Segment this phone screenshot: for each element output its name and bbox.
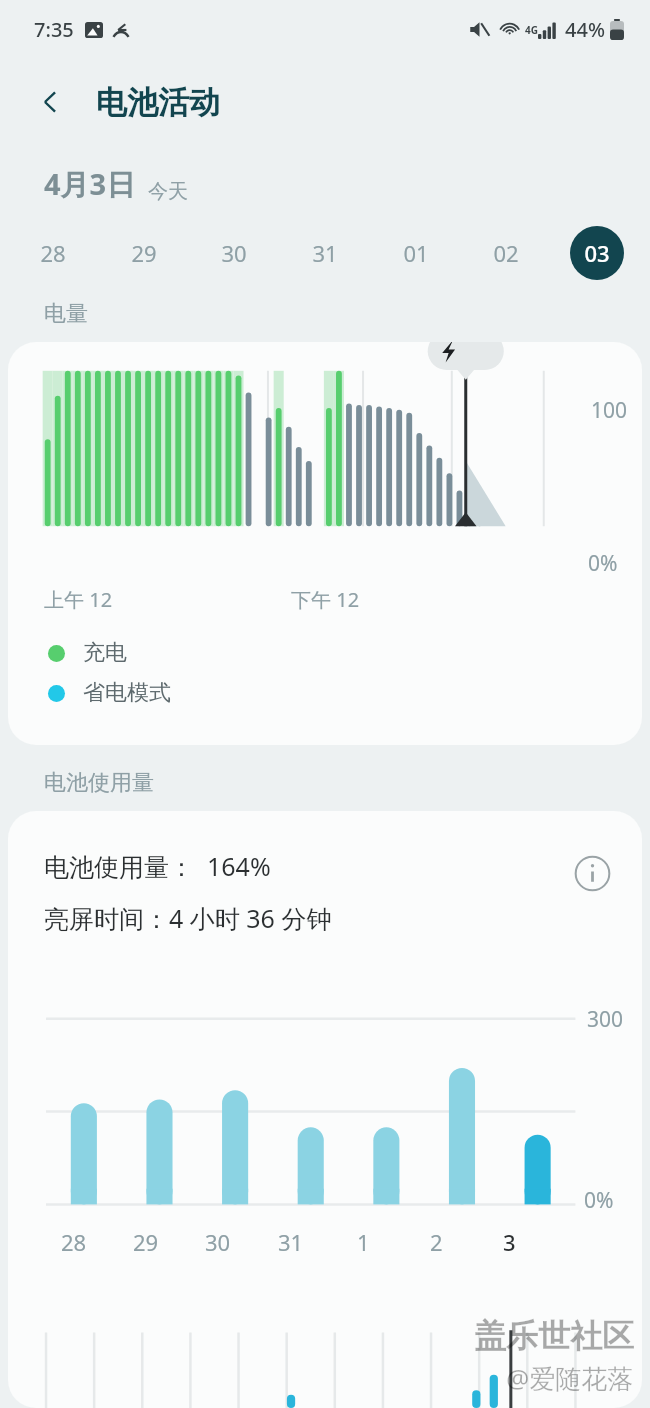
staticText: 300	[587, 1005, 624, 1034]
staticText: 02	[493, 238, 519, 268]
staticText: 2	[430, 1227, 443, 1257]
staticText: 充电	[83, 639, 127, 667]
button[interactable]: Information	[568, 849, 616, 897]
staticText: 30	[221, 238, 247, 268]
staticText: 31	[312, 238, 338, 268]
button[interactable]: 31	[298, 226, 352, 280]
staticText: 28	[61, 1227, 87, 1257]
staticText: 3	[503, 1227, 516, 1257]
staticText: 今天	[148, 179, 188, 204]
staticText: 44%	[565, 16, 605, 43]
button[interactable]: 28	[26, 226, 80, 280]
button[interactable]: 03	[570, 226, 624, 280]
staticText: 31	[278, 1227, 304, 1257]
button[interactable]: 电池使用量： 164%	[8, 811, 642, 1408]
button[interactable]: 30	[207, 226, 261, 280]
staticText: 7:35	[34, 16, 74, 43]
button[interactable]: 02	[479, 226, 533, 280]
button[interactable]: 29	[117, 226, 171, 280]
staticText: 29	[131, 238, 157, 268]
staticText: 03	[584, 238, 610, 268]
staticText: 1	[357, 1227, 370, 1257]
staticText: 4月3日	[44, 164, 136, 204]
staticText: 电量	[44, 300, 88, 328]
staticText: 28	[40, 238, 66, 268]
button[interactable]: Back	[26, 78, 74, 126]
staticText: 下午 12	[291, 586, 360, 613]
staticText: 29	[133, 1227, 159, 1257]
staticText: 30	[205, 1227, 231, 1257]
staticText: 0%	[588, 549, 618, 578]
staticText: 上午 12	[44, 586, 113, 613]
staticText: 省电模式	[83, 679, 171, 707]
button[interactable]: 100	[8, 342, 642, 745]
staticText: 电池使用量： 164%	[44, 849, 271, 883]
staticText: 01	[403, 238, 429, 268]
staticText: 4G	[525, 23, 538, 37]
staticText: 100	[591, 396, 628, 425]
staticText: @爱随花落	[506, 1360, 634, 1396]
staticText: 电池使用量	[44, 769, 154, 797]
staticText: 电池活动	[96, 83, 220, 122]
button[interactable]: 01	[389, 226, 443, 280]
staticText: 盖乐世社区	[474, 1316, 634, 1356]
staticText: 亮屏时间：4 小时 36 分钟	[44, 901, 332, 935]
staticText: 0%	[584, 1186, 614, 1215]
